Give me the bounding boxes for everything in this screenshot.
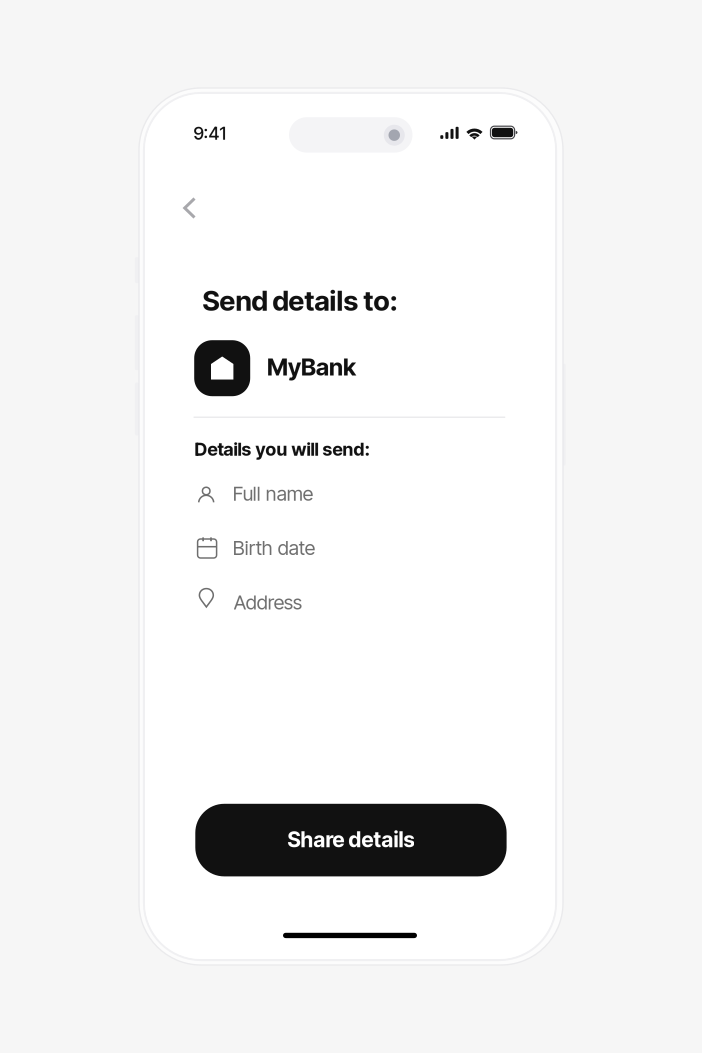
- staticText: Details you will send:: [195, 438, 371, 460]
- button[interactable]: Share details: [195, 804, 507, 876]
- staticText: Full name: [233, 482, 313, 505]
- staticText: Birth date: [233, 536, 315, 560]
- staticText: MyBank: [267, 353, 356, 381]
- staticText: Share details: [287, 827, 414, 852]
- button[interactable]: Back: [165, 183, 215, 233]
- staticText: Send details to:: [202, 284, 397, 317]
- staticText: Address: [234, 590, 302, 614]
- staticText: 9:41: [193, 122, 226, 144]
